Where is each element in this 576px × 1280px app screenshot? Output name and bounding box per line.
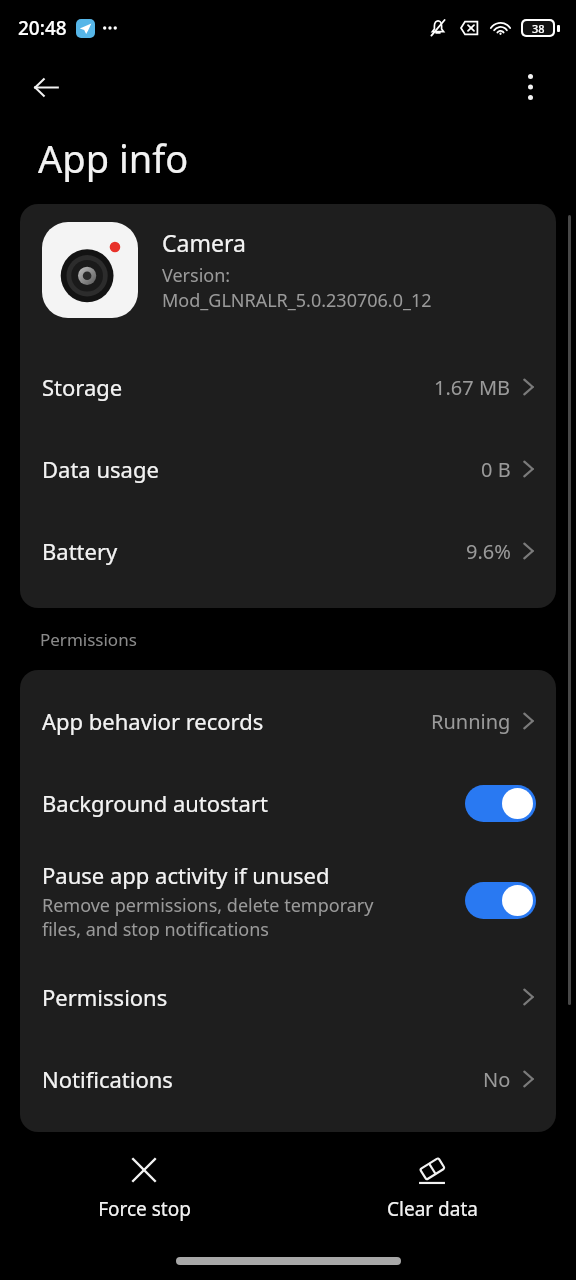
button[interactable]: Back: [20, 61, 72, 113]
button[interactable]: Background autostart: [20, 762, 556, 844]
button[interactable]: Toggle: [465, 785, 536, 822]
staticText: 20:48: [18, 15, 67, 41]
staticText: App info: [38, 132, 189, 184]
staticText: 9.6%: [466, 538, 511, 565]
staticText: Version:: [162, 263, 231, 288]
staticText: Running: [431, 708, 511, 735]
staticText: Mod_GLNRALR_5.0.230706.0_12: [162, 288, 432, 313]
button[interactable]: Permissions: [20, 956, 556, 1038]
button[interactable]: Storage: [20, 346, 556, 428]
button[interactable]: Force stop: [0, 1144, 288, 1230]
button[interactable]: Clear data: [288, 1144, 576, 1230]
staticText: 0 B: [481, 456, 511, 483]
staticText: Camera: [162, 227, 246, 258]
staticText: Storage: [42, 372, 123, 402]
staticText: Data usage: [42, 454, 159, 484]
staticText: Pause app activity if unused: [42, 860, 330, 890]
staticText: Force stop: [98, 1196, 191, 1222]
button[interactable]: Toggle: [465, 882, 536, 919]
button[interactable]: Data usage: [20, 428, 556, 510]
staticText: Permissions: [40, 628, 137, 651]
staticText: Clear data: [387, 1196, 478, 1222]
staticText: Permissions: [42, 982, 168, 1012]
button[interactable]: App behavior records: [20, 680, 556, 762]
staticText: No: [483, 1066, 511, 1093]
staticText: App behavior records: [42, 706, 264, 736]
staticText: Notifications: [42, 1064, 173, 1094]
staticText: Remove permissions, delete temporary fil…: [42, 893, 374, 941]
button[interactable]: Battery: [20, 510, 556, 592]
button[interactable]: More options: [506, 63, 554, 111]
staticText: 38: [532, 21, 545, 35]
staticText: Battery: [42, 536, 118, 566]
button[interactable]: Notifications: [20, 1038, 556, 1120]
staticText: 1.67 MB: [434, 374, 511, 401]
staticText: Background autostart: [42, 788, 268, 818]
button[interactable]: Pause app activity if unused: [20, 844, 556, 956]
